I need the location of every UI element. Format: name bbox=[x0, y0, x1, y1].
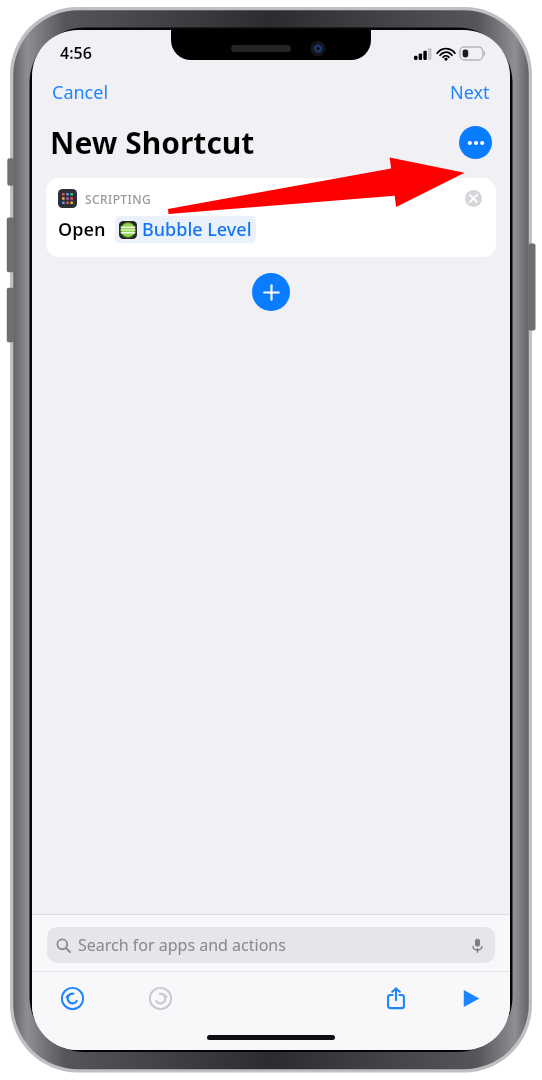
staticText: 4:56 bbox=[60, 42, 92, 64]
staticText: SCRIPTING bbox=[85, 191, 152, 207]
staticText: Next bbox=[450, 80, 490, 105]
button[interactable]: Add action bbox=[252, 273, 290, 311]
button[interactable]: Run shortcut bbox=[450, 978, 490, 1018]
button[interactable]: Bubble Level bbox=[115, 216, 256, 243]
staticText: Cancel bbox=[52, 80, 109, 105]
button[interactable]: Redo bbox=[140, 978, 180, 1018]
button[interactable]: Search for apps and actions bbox=[47, 927, 495, 963]
staticText: Open bbox=[58, 217, 106, 242]
button[interactable]: Voice search bbox=[468, 936, 486, 954]
button[interactable]: More options bbox=[459, 126, 492, 159]
button[interactable]: Next bbox=[444, 76, 496, 109]
staticText: Bubble Level bbox=[142, 217, 252, 242]
button[interactable]: Share bbox=[376, 978, 416, 1018]
button[interactable]: Remove action bbox=[462, 187, 484, 209]
button[interactable]: Undo bbox=[52, 978, 92, 1018]
button[interactable]: SCRIPTING bbox=[46, 178, 496, 257]
staticText: Search for apps and actions bbox=[78, 934, 468, 956]
button[interactable]: Cancel bbox=[46, 76, 115, 109]
staticText: New Shortcut bbox=[50, 122, 255, 163]
